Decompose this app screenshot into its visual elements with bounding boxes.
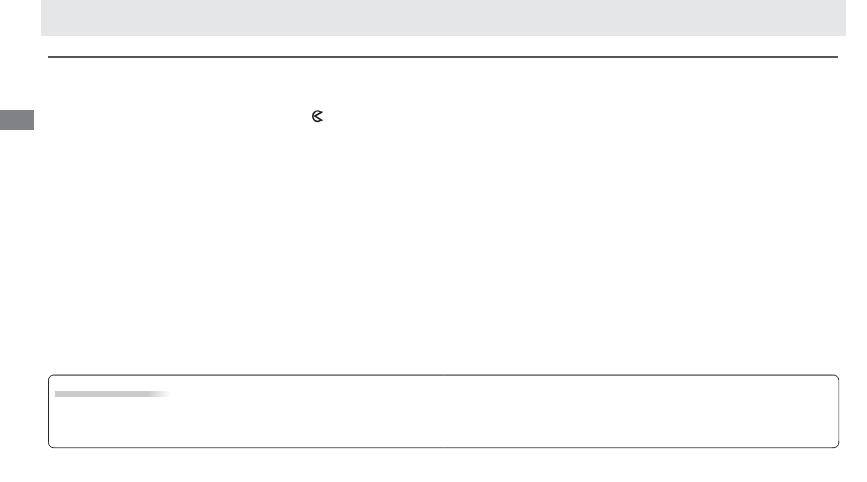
button[interactable]: Logo — [309, 107, 324, 124]
button[interactable] — [48, 374, 839, 449]
